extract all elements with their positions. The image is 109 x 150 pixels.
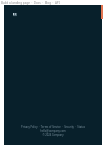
button[interactable]: Home xyxy=(13,13,17,17)
staticText: Privacy Policy · Terms of Service · Secu… xyxy=(21,125,85,129)
staticText: hello@company.com xyxy=(40,129,66,133)
staticText: © 2024 Company xyxy=(42,133,64,137)
staticText: Build a landing page · Docs · Blog · API xyxy=(1,1,60,5)
